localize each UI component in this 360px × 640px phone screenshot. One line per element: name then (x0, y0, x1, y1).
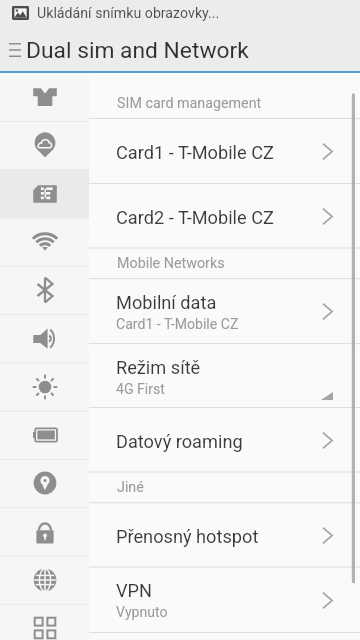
staticText: Přenosný hotspot (116, 526, 259, 547)
button[interactable]: Card2 - T-Mobile CZ (89, 184, 360, 249)
button[interactable]: Card1 - T-Mobile CZ (89, 119, 360, 184)
button[interactable]: Location (0, 459, 89, 507)
staticText: Card1 - T-Mobile CZ (116, 316, 239, 333)
staticText: Datový roaming (116, 431, 243, 452)
button[interactable]: Language (0, 556, 89, 604)
button[interactable]: Themes (0, 73, 89, 121)
button[interactable]: Mobilní data (89, 279, 360, 344)
staticText: Režim sítě (116, 357, 201, 378)
staticText: Dual sim and Network (26, 37, 249, 64)
button[interactable]: Display brightness (0, 363, 89, 411)
staticText: Jiné (117, 479, 144, 496)
staticText: 4G First (116, 381, 165, 398)
staticText: SIM card management (117, 95, 262, 112)
staticText: Card2 - T-Mobile CZ (116, 207, 274, 228)
button[interactable]: Cloud backup (0, 121, 89, 169)
button[interactable]: Sound (0, 315, 89, 363)
staticText: Mobilní data (116, 292, 217, 313)
button[interactable]: Datový roaming (89, 408, 360, 473)
staticText: VPN (116, 580, 153, 601)
button[interactable]: Přenosný hotspot (89, 503, 360, 567)
staticText: Card1 - T-Mobile CZ (116, 142, 274, 163)
button[interactable]: Apps (0, 604, 89, 640)
button[interactable]: Security (0, 508, 89, 556)
button[interactable]: Battery (0, 411, 89, 459)
button[interactable]: Režim sítě (89, 344, 360, 408)
button[interactable]: Dual sim and network (0, 170, 89, 218)
button[interactable]: Open navigation menu (0, 28, 29, 71)
staticText: Mobile Networks (117, 255, 225, 272)
staticText: Ukládání snímku obrazovky... (37, 5, 220, 22)
button[interactable]: Wi-Fi (0, 218, 89, 266)
staticText: Vypnuto (116, 604, 168, 621)
button[interactable]: VPN (89, 567, 360, 633)
button[interactable]: Bluetooth (0, 266, 89, 314)
